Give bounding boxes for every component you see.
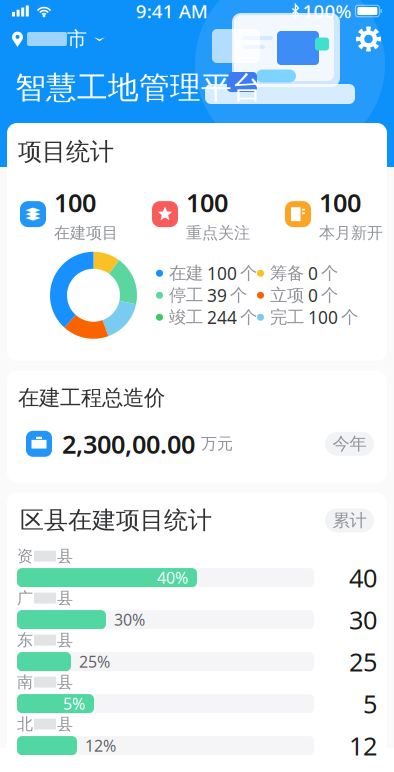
staticText: 25	[349, 645, 377, 678]
staticText: 100	[319, 185, 361, 219]
staticText: 5	[363, 687, 377, 720]
staticText: 立项	[270, 285, 304, 306]
staticText: 12%	[85, 735, 116, 756]
staticText: 30	[349, 603, 377, 636]
staticText: 244	[207, 306, 237, 329]
staticText: 县	[57, 714, 73, 734]
staticText: 2,300,00.00	[62, 427, 195, 461]
staticText: 资	[17, 546, 33, 566]
button[interactable]: 累计	[325, 508, 374, 532]
staticText: 完工	[270, 307, 304, 328]
staticText: 筹备	[270, 263, 304, 284]
staticText: 40	[349, 561, 377, 594]
staticText: 重点关注	[186, 223, 250, 243]
staticText: 县	[57, 672, 73, 692]
staticText: 县	[57, 546, 73, 566]
staticText: 累计	[332, 510, 366, 531]
button[interactable]: 今年	[325, 432, 374, 456]
staticText: 停工	[169, 285, 203, 306]
staticText: 个	[240, 263, 257, 284]
staticText: 100	[186, 185, 228, 219]
staticText: 万元	[201, 434, 233, 454]
staticText: 100%	[302, 0, 351, 23]
staticText: 5%	[63, 693, 85, 714]
staticText: 在建工程总造价	[18, 385, 165, 411]
staticText: 30%	[114, 609, 145, 630]
staticText: 0	[308, 262, 318, 285]
staticText: 北	[17, 714, 33, 734]
staticText: 100	[308, 306, 338, 329]
staticText: 竣工	[169, 307, 203, 328]
button[interactable]: 设置	[343, 22, 394, 56]
staticText: 9:41 AM	[136, 0, 208, 23]
staticText: 市	[67, 27, 87, 51]
staticText: 南	[17, 672, 33, 692]
button[interactable]: 市	[0, 25, 117, 53]
staticText: 广	[17, 588, 33, 608]
staticText: 区县在建项目统计	[20, 506, 212, 535]
staticText: 在建项目	[54, 223, 118, 243]
staticText: 12	[349, 729, 377, 762]
staticText: 39	[207, 284, 227, 307]
staticText: 在建	[169, 263, 203, 284]
staticText: 100	[207, 262, 237, 285]
staticText: 个	[321, 285, 338, 306]
staticText: 0	[308, 284, 318, 307]
staticText: 个	[341, 307, 358, 328]
staticText: 100	[54, 185, 96, 219]
staticText: 今年	[332, 433, 366, 454]
staticText: 个	[230, 285, 247, 306]
staticText: 个	[321, 263, 338, 284]
staticText: 25%	[79, 651, 110, 672]
staticText: 智慧工地管理平台	[15, 69, 263, 107]
staticText: 本月新开	[319, 223, 383, 243]
staticText: 项目统计	[18, 137, 114, 166]
staticText: 县	[57, 630, 73, 650]
staticText: 个	[240, 307, 257, 328]
staticText: 县	[57, 588, 73, 608]
staticText: 40%	[157, 567, 188, 588]
staticText: 东	[17, 630, 33, 650]
